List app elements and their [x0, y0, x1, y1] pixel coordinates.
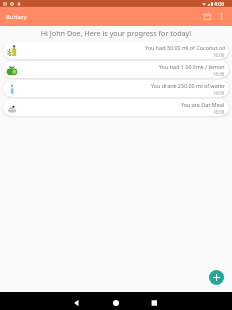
- button[interactable]: More options: [214, 7, 229, 26]
- staticText: 16:06: [213, 109, 225, 115]
- staticText: 16:06: [213, 90, 225, 96]
- button[interactable]: You had 1.00 lime / lemon: [3, 61, 229, 78]
- staticText: 4:06: [214, 0, 225, 7]
- button[interactable]: You had 30.00 ml of Coconut oil: [3, 42, 229, 59]
- button[interactable]: You ate Oat Meal: [3, 99, 229, 116]
- staticText: You drank 250.00 ml of water: [151, 82, 225, 89]
- button[interactable]: You drank 250.00 ml of water: [3, 80, 229, 97]
- button[interactable]: Add entry: [209, 270, 224, 285]
- staticText: 16:06: [213, 52, 225, 58]
- staticText: You ate Oat Meal: [181, 101, 225, 108]
- staticText: Buttery: [6, 13, 27, 21]
- staticText: 16:06: [213, 71, 225, 77]
- staticText: You had 30.00 ml of Coconut oil: [145, 44, 225, 51]
- staticText: Hi John Doe, Here is your progress for t…: [0, 28, 232, 38]
- button[interactable]: Calendar: [200, 7, 214, 26]
- staticText: You had 1.00 lime / lemon: [159, 63, 225, 70]
